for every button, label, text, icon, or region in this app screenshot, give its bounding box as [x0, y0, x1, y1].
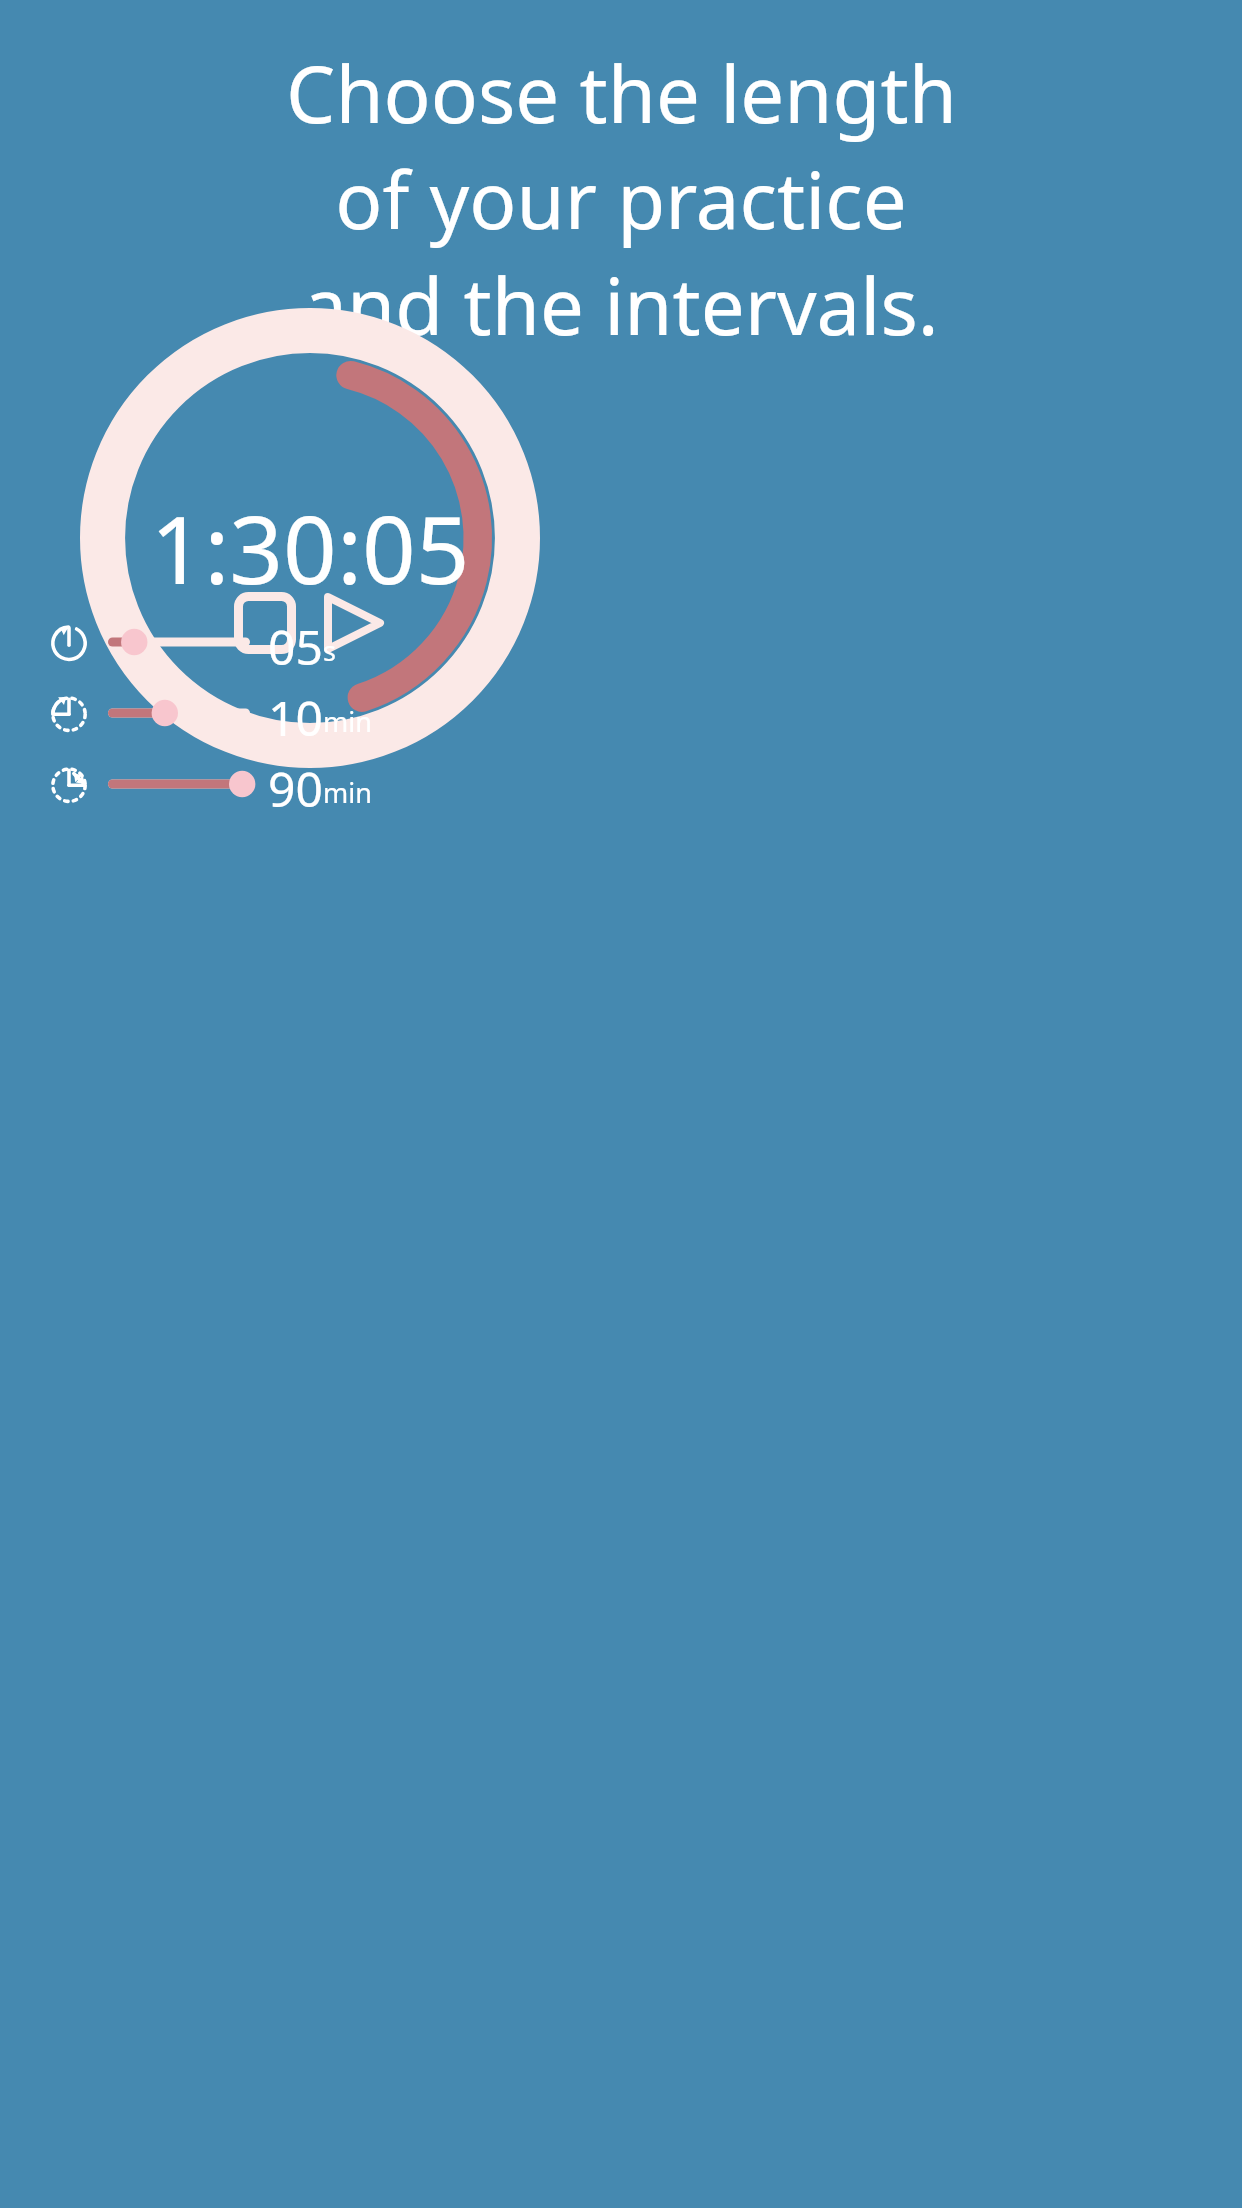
button[interactable]: Stop [234, 592, 296, 654]
staticText: of your practice [335, 146, 907, 252]
staticText: 1:30:05 [150, 484, 470, 612]
staticText: min [323, 703, 372, 740]
button[interactable]: 1:30:05 [80, 308, 540, 768]
staticText: min [323, 774, 372, 811]
staticText: 90 [268, 756, 323, 811]
staticText: and the intervals. [303, 252, 939, 358]
other: Interval duration [48, 621, 90, 663]
staticText: Choose the length [286, 40, 957, 146]
other: Warm up duration [48, 692, 90, 734]
button[interactable]: Session duration [0, 756, 1242, 811]
staticText: s [323, 632, 336, 669]
button[interactable]: Play [322, 591, 386, 655]
staticText: 10 [268, 685, 323, 740]
staticText: 05 [268, 614, 323, 669]
other: Session duration [48, 763, 90, 805]
button[interactable]: Warm up duration [0, 685, 1242, 740]
button[interactable]: Interval duration [0, 614, 1242, 669]
